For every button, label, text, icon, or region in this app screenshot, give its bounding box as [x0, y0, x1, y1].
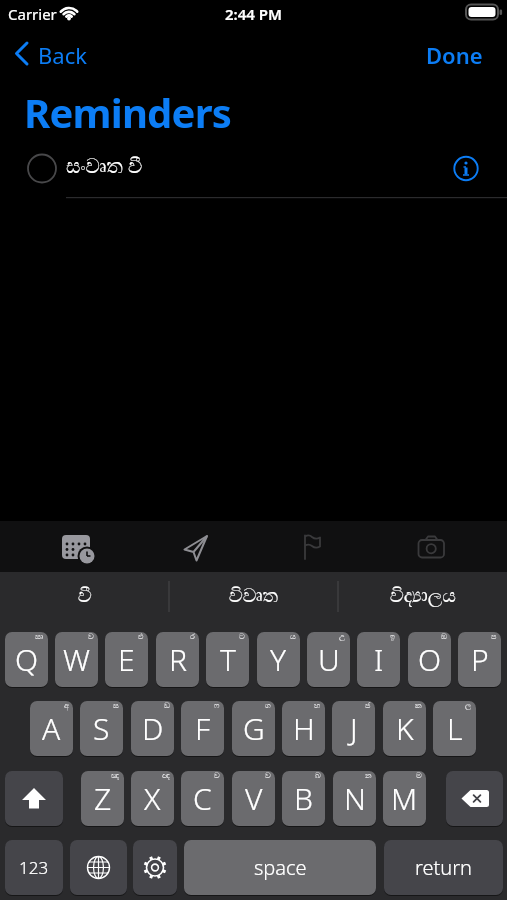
- button[interactable]: I: [357, 632, 400, 687]
- staticText: M: [391, 778, 418, 819]
- button[interactable]: A: [30, 701, 73, 756]
- staticText: ඔ: [441, 633, 447, 641]
- button[interactable]: වී: [0, 572, 169, 621]
- button[interactable]: V: [232, 771, 275, 826]
- button[interactable]: සංවෘත වී: [0, 148, 507, 190]
- staticText: O: [418, 639, 442, 680]
- button[interactable]: O: [408, 632, 451, 687]
- button[interactable]: S: [80, 701, 123, 756]
- button[interactable]: L: [433, 701, 476, 756]
- staticText: න: [365, 772, 372, 780]
- staticText: සංවෘත වී: [66, 152, 143, 179]
- staticText: බ: [315, 772, 321, 780]
- button[interactable]: C: [181, 771, 224, 826]
- staticText: ඥ: [162, 772, 170, 780]
- button[interactable]: Z: [81, 771, 124, 826]
- staticText: ජ: [365, 702, 371, 710]
- button[interactable]: [283, 524, 343, 570]
- staticText: ච: [214, 772, 220, 780]
- button[interactable]: [46, 524, 106, 570]
- button[interactable]: W: [55, 632, 98, 687]
- staticText: ඩ: [164, 702, 170, 710]
- staticText: ෆ: [214, 702, 220, 710]
- staticText: E: [118, 639, 135, 680]
- button[interactable]: space: [184, 840, 376, 895]
- button[interactable]: X: [131, 771, 174, 826]
- button[interactable]: Y: [257, 632, 300, 687]
- staticText: 123: [19, 856, 49, 879]
- staticText: A: [42, 708, 61, 749]
- button[interactable]: Back: [10, 40, 100, 68]
- staticText: ට: [239, 633, 245, 641]
- staticText: එ: [138, 633, 144, 641]
- button[interactable]: [5, 771, 63, 826]
- staticText: ල: [465, 702, 472, 710]
- staticText: C: [193, 778, 212, 819]
- staticText: ප: [491, 633, 497, 641]
- button[interactable]: F: [181, 701, 224, 756]
- staticText: Carrier: [8, 4, 57, 24]
- button[interactable]: return: [384, 840, 503, 895]
- staticText: U: [318, 639, 340, 680]
- staticText: ඍ: [35, 633, 44, 641]
- button[interactable]: Q: [5, 632, 48, 687]
- staticText: ඉ: [390, 633, 396, 641]
- staticText: Z: [94, 778, 112, 819]
- staticText: අ: [64, 702, 69, 710]
- button[interactable]: M: [383, 771, 426, 826]
- staticText: R: [169, 639, 187, 680]
- staticText: ය: [290, 633, 296, 641]
- staticText: ග: [265, 702, 271, 710]
- staticText: Q: [15, 639, 39, 680]
- button[interactable]: T: [206, 632, 249, 687]
- button[interactable]: [133, 840, 177, 895]
- staticText: හ: [314, 702, 321, 710]
- button[interactable]: [70, 840, 127, 895]
- staticText: X: [144, 778, 161, 819]
- staticText: ස: [113, 702, 119, 710]
- staticText: return: [415, 854, 472, 881]
- button[interactable]: 123: [5, 840, 63, 895]
- staticText: P: [471, 639, 489, 680]
- staticText: Reminders: [24, 85, 231, 139]
- staticText: V: [245, 778, 263, 819]
- button[interactable]: විද්‍යාලය: [338, 572, 507, 621]
- button[interactable]: විවෘත: [169, 572, 338, 621]
- staticText: විද්‍යාලය: [390, 587, 456, 606]
- staticText: විවෘත: [229, 587, 279, 606]
- button[interactable]: Done: [425, 40, 495, 68]
- button[interactable]: H: [282, 701, 325, 756]
- button[interactable]: G: [232, 701, 275, 756]
- staticText: D: [142, 708, 164, 749]
- staticText: L: [447, 708, 463, 749]
- staticText: space: [254, 854, 307, 881]
- staticText: K: [396, 708, 414, 749]
- staticText: J: [350, 708, 358, 749]
- button[interactable]: P: [458, 632, 501, 687]
- staticText: උ: [339, 633, 346, 641]
- button[interactable]: K: [383, 701, 426, 756]
- button[interactable]: E: [105, 632, 148, 687]
- staticText: H: [293, 708, 315, 749]
- button[interactable]: N: [333, 771, 376, 826]
- button[interactable]: [401, 524, 461, 570]
- button[interactable]: U: [307, 632, 350, 687]
- button[interactable]: B: [282, 771, 325, 826]
- staticText: ඤ: [111, 772, 120, 780]
- staticText: B: [294, 778, 313, 819]
- staticText: Back: [38, 40, 87, 68]
- button[interactable]: [446, 771, 503, 826]
- staticText: ක: [415, 702, 422, 710]
- button[interactable]: [166, 524, 226, 570]
- button[interactable]: D: [131, 701, 174, 756]
- staticText: Done: [426, 40, 483, 68]
- staticText: I: [374, 639, 384, 680]
- staticText: ර: [190, 633, 195, 641]
- button[interactable]: R: [156, 632, 199, 687]
- staticText: ව: [88, 633, 94, 641]
- staticText: 2:44 PM: [225, 4, 282, 24]
- button[interactable]: J: [332, 701, 375, 756]
- staticText: G: [243, 708, 265, 749]
- staticText: ම: [416, 772, 422, 780]
- staticText: N: [344, 778, 366, 819]
